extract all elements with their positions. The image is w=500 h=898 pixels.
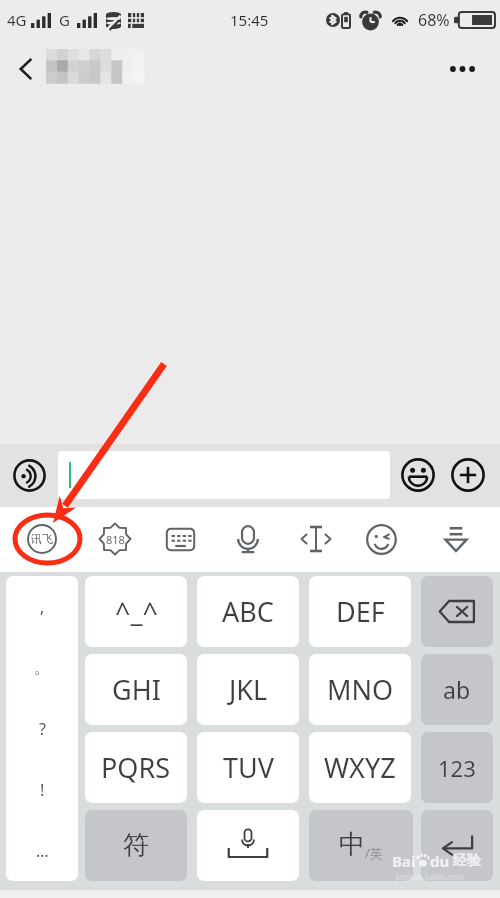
button[interactable]: More options bbox=[438, 45, 486, 93]
button[interactable] bbox=[58, 451, 390, 499]
staticText: du bbox=[430, 851, 450, 871]
staticText: ab bbox=[443, 674, 471, 705]
button[interactable]: Back bbox=[4, 47, 48, 91]
staticText: 818 bbox=[106, 532, 125, 547]
button[interactable]: 。 bbox=[6, 637, 78, 698]
button[interactable]: Space and voice bbox=[197, 810, 299, 881]
button[interactable]: , bbox=[6, 576, 78, 637]
staticText: GHI bbox=[112, 671, 161, 708]
staticText: JKL bbox=[229, 671, 268, 708]
staticText: jingyan.baidu.com bbox=[395, 871, 465, 882]
button[interactable]: JKL bbox=[197, 654, 299, 725]
staticText: ABC bbox=[222, 593, 274, 630]
button[interactable]: DEF bbox=[309, 576, 411, 647]
button[interactable]: GHI bbox=[85, 654, 187, 725]
button[interactable]: … bbox=[6, 820, 78, 881]
staticText: 符 bbox=[123, 829, 149, 862]
staticText: 经验 bbox=[453, 852, 481, 870]
button[interactable]: ABC bbox=[197, 576, 299, 647]
button[interactable]: Sticker store bbox=[92, 516, 138, 562]
staticText: 中 bbox=[339, 828, 365, 861]
staticText: Bai bbox=[392, 851, 416, 871]
button[interactable]: Voice input bbox=[225, 516, 271, 562]
staticText: 15:45 bbox=[230, 10, 269, 30]
staticText: G bbox=[59, 10, 70, 30]
staticText: 123 bbox=[438, 753, 476, 783]
staticText: 讯飞 bbox=[31, 532, 53, 546]
button[interactable]: 符 bbox=[85, 810, 187, 881]
button[interactable]: Voice input bbox=[7, 453, 51, 497]
button[interactable]: WXYZ bbox=[309, 732, 411, 803]
button[interactable]: PQRS bbox=[85, 732, 187, 803]
staticText: 68% bbox=[418, 9, 450, 31]
button[interactable]: 中 bbox=[309, 810, 413, 881]
staticText: 4G bbox=[7, 10, 27, 30]
staticText: /英 bbox=[365, 844, 383, 862]
staticText: , bbox=[40, 596, 45, 618]
button[interactable]: TUV bbox=[197, 732, 299, 803]
button[interactable]: ab bbox=[421, 654, 493, 725]
button[interactable]: ! bbox=[6, 759, 78, 820]
button[interactable]: More functions bbox=[448, 455, 488, 495]
staticText: … bbox=[36, 840, 49, 862]
staticText: PQRS bbox=[101, 749, 171, 786]
staticText: ? bbox=[39, 718, 46, 740]
button[interactable]: 123 bbox=[421, 732, 493, 803]
button[interactable]: ^_^ bbox=[85, 576, 187, 647]
staticText: ^_^ bbox=[115, 593, 158, 630]
staticText: ! bbox=[40, 779, 45, 801]
button[interactable]: Emoji bbox=[398, 455, 438, 495]
staticText: WXYZ bbox=[324, 749, 396, 786]
button[interactable]: ? bbox=[6, 698, 78, 759]
staticText: DEF bbox=[336, 593, 385, 630]
staticText: 。 bbox=[34, 658, 50, 678]
button[interactable]: Keyboard layout bbox=[157, 516, 203, 562]
button[interactable]: Hide keyboard bbox=[433, 516, 479, 562]
button[interactable]: Switch input method bbox=[19, 516, 65, 562]
staticText: TUV bbox=[223, 749, 274, 786]
staticText: MNO bbox=[327, 671, 394, 708]
button[interactable]: Backspace bbox=[421, 576, 493, 647]
button[interactable]: Enter bbox=[421, 810, 493, 881]
button[interactable]: Emoticons bbox=[358, 516, 404, 562]
button[interactable]: MNO bbox=[309, 654, 411, 725]
button[interactable]: Move cursor bbox=[293, 516, 339, 562]
